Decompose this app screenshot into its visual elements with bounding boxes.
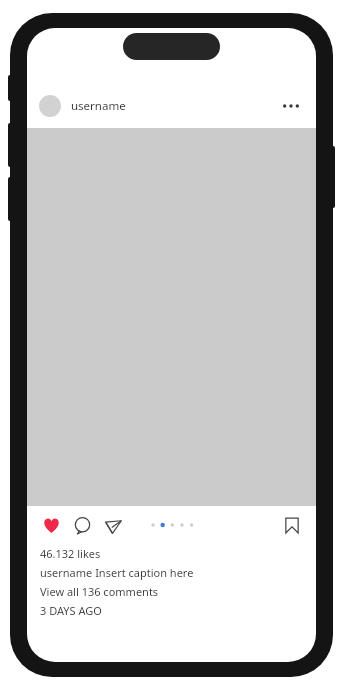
button[interactable]: 46.132 likes [40, 546, 101, 561]
button[interactable]: More options [278, 93, 304, 119]
button[interactable]: Unlike [38, 512, 64, 538]
staticText: 3 DAYS AGO [40, 603, 102, 618]
staticText: username Insert caption here [40, 565, 194, 580]
button[interactable]: Share [100, 512, 126, 538]
button[interactable]: Comment [69, 512, 95, 538]
button[interactable] [39, 95, 61, 117]
button[interactable]: View all 136 comments [40, 584, 159, 599]
button[interactable]: username [71, 98, 126, 114]
button[interactable]: Save [279, 512, 305, 538]
